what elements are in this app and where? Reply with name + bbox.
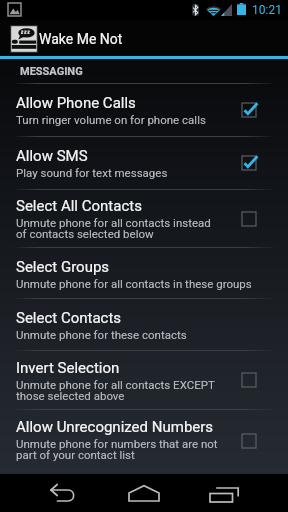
button[interactable]: Home — [112, 475, 176, 512]
button[interactable]: Allow SMS — [0, 137, 288, 189]
staticText: Unmute phone for numbers that are not pa… — [16, 437, 218, 462]
staticText: Select Contacts — [16, 309, 122, 327]
staticText: Wake Me Not — [39, 31, 123, 47]
button[interactable]: Select Groups — [0, 248, 288, 298]
staticText: Invert Selection — [16, 359, 120, 377]
staticText: Unmute phone for all contacts in these g… — [16, 277, 252, 290]
staticText: Unmute phone for all contacts EXCEPT tho… — [16, 378, 215, 403]
staticText: MESSAGING — [20, 65, 83, 78]
staticText: Unmute phone for all contacts instead of… — [16, 216, 211, 241]
staticText: Select Groups — [16, 258, 110, 276]
button[interactable]: Allow Phone Calls — [0, 84, 288, 136]
staticText: Play sound for text messages — [16, 166, 168, 179]
button[interactable]: Select Contacts — [0, 299, 288, 350]
staticText: 10:21 — [252, 3, 282, 17]
button[interactable]: Recent apps — [192, 475, 256, 512]
staticText: Unmute phone for these contacts — [16, 328, 187, 341]
button[interactable]: Back — [32, 475, 96, 512]
staticText: Turn ringer volume on for phone calls — [16, 113, 206, 126]
staticText: Allow Unrecognized Numbers — [16, 418, 214, 436]
staticText: Allow Phone Calls — [16, 94, 136, 112]
button[interactable]: Invert Selection — [0, 351, 288, 409]
staticText: Select All Contacts — [16, 197, 142, 215]
staticText: Allow SMS — [16, 147, 88, 165]
button[interactable]: Allow Unrecognized Numbers — [0, 410, 288, 471]
button[interactable]: Select All Contacts — [0, 190, 288, 247]
